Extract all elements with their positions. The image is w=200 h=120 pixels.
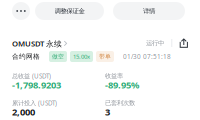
staticText: -1,798.9203 xyxy=(12,79,61,91)
staticText: 2,000 xyxy=(12,106,35,118)
button[interactable]: Share xyxy=(180,38,188,48)
button[interactable]: More options xyxy=(12,2,30,20)
staticText: 已套利次数 xyxy=(105,99,135,107)
staticText: 3 xyxy=(105,106,110,118)
staticText: 累计投入 (USDT) xyxy=(12,99,57,107)
button[interactable]: OMUSDT 永续 xyxy=(12,38,67,49)
staticText: 15.00x xyxy=(73,52,90,60)
staticText: 总收益 (USDT) xyxy=(12,72,51,80)
button[interactable]: 调整保证金 xyxy=(35,2,104,20)
staticText: 合约网格 xyxy=(12,52,40,61)
staticText: 收益率 xyxy=(105,72,123,80)
button[interactable]: 详情 xyxy=(113,2,185,20)
staticText: OMUSDT 永续 xyxy=(12,38,62,49)
staticText: 详情 xyxy=(143,7,155,15)
staticText: 调整保证金 xyxy=(54,7,84,15)
staticText: 01/30 07:51:18 xyxy=(123,52,171,61)
staticText: 运行中 xyxy=(146,39,164,47)
staticText: 做空 xyxy=(52,53,64,60)
staticText: -89.95% xyxy=(105,79,139,91)
staticText: 带单 xyxy=(99,53,111,60)
